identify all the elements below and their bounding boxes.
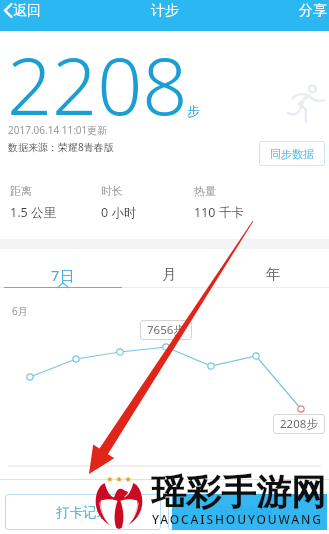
- button[interactable]: 7日: [4, 249, 122, 287]
- button[interactable]: 年: [218, 249, 329, 287]
- staticText: 0 小时: [101, 204, 137, 221]
- staticText: 6月: [12, 304, 28, 318]
- button[interactable]: 打卡记录: [5, 494, 161, 530]
- staticText: 1.5 公里: [10, 204, 56, 221]
- staticText: 运动海报: [219, 504, 273, 521]
- staticText: 分享: [299, 2, 327, 20]
- staticText: 瑶彩手游网: [151, 470, 326, 514]
- staticText: 热量: [194, 184, 216, 198]
- button[interactable]: 返回: [0, 0, 49, 21]
- staticText: 时长: [101, 184, 123, 198]
- staticText: 2208: [7, 31, 188, 139]
- staticText: 距离: [10, 184, 32, 198]
- button[interactable]: 分享: [291, 0, 329, 21]
- button[interactable]: 月: [122, 249, 218, 287]
- button[interactable]: 运动海报: [168, 494, 324, 530]
- staticText: YAOCAISHOUYOUWANG: [152, 511, 323, 527]
- staticText: 数据来源：荣耀8青春版: [8, 140, 114, 154]
- staticText: 2208步: [280, 416, 318, 432]
- staticText: 7656步: [147, 322, 185, 338]
- staticText: 步: [187, 103, 200, 119]
- staticText: 7日: [51, 265, 76, 285]
- staticText: 同步数据: [270, 147, 314, 161]
- staticText: 2017.06.14 11:01更新: [8, 123, 108, 137]
- staticText: 计步: [151, 2, 179, 20]
- staticText: 年: [266, 265, 282, 283]
- staticText: 月: [162, 265, 178, 283]
- staticText: 返回: [13, 2, 41, 20]
- staticText: 110 千卡: [194, 204, 244, 221]
- other: Running activity: [286, 81, 326, 125]
- button[interactable]: 同步数据: [259, 141, 325, 166]
- staticText: 打卡记录: [56, 504, 110, 521]
